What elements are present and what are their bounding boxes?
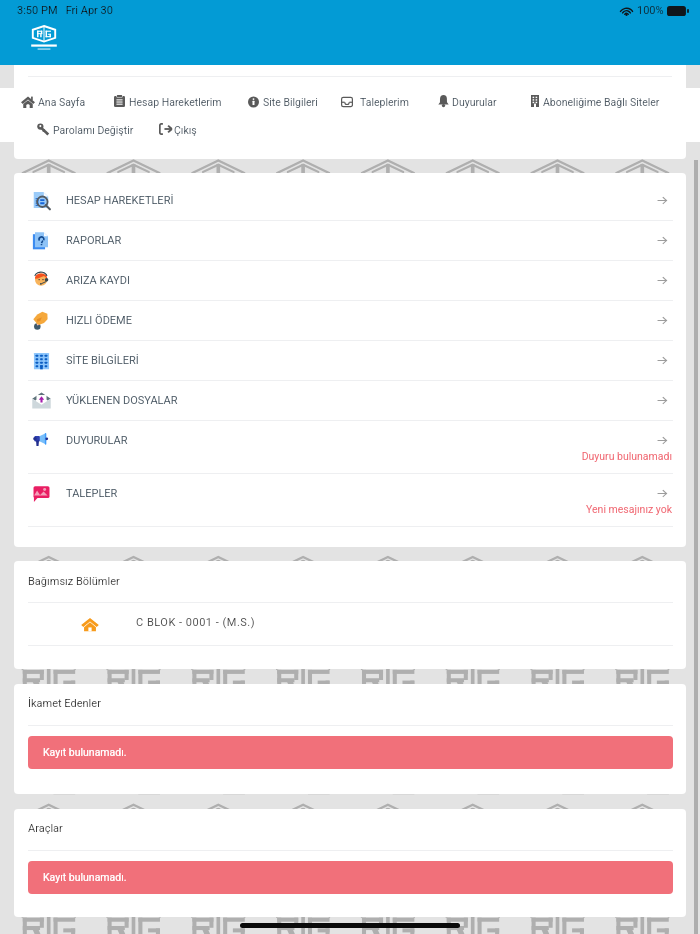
button[interactable]	[244, 92, 344, 112]
staticText: DUYURULAR	[66, 434, 128, 447]
staticText: Ana Sayfa	[38, 96, 86, 108]
button[interactable]	[110, 91, 231, 111]
button[interactable]	[155, 119, 206, 139]
staticText: 100%	[637, 4, 664, 17]
staticText: RAPORLAR	[66, 234, 122, 247]
button[interactable]: SİTE BİLGİLERİ	[14, 340, 686, 380]
button[interactable]: RAPORLAR	[14, 220, 686, 260]
button[interactable]	[434, 91, 505, 111]
staticText: Çıkış	[174, 124, 197, 136]
button[interactable]: Kayıt bulunamadı.	[28, 861, 673, 894]
staticText: Bağımsız Bölümler	[28, 575, 120, 588]
staticText: Kayıt bulunamadı.	[43, 746, 127, 758]
button[interactable]: C BLOK - 0001 - (M.S.)	[28, 603, 673, 645]
staticText: SİTE BİLGİLERİ	[66, 354, 139, 367]
staticText: C BLOK - 0001 - (M.S.)	[136, 616, 256, 629]
staticText: ARIZA KAYDI	[66, 274, 130, 287]
staticText: Taleplerim	[360, 96, 409, 108]
staticText: TALEPLER	[66, 487, 118, 500]
other: Gümüştekin logo	[28, 26, 60, 52]
staticText: İkamet Edenler	[28, 697, 101, 710]
button[interactable]: ARIZA KAYDI	[14, 260, 686, 300]
staticText: Aboneliğime Bağlı Siteler	[543, 96, 660, 108]
staticText: Araçlar	[28, 822, 63, 835]
staticText: 3:50 PM Fri Apr 30	[17, 4, 113, 17]
button[interactable]	[526, 91, 684, 111]
staticText: Kayıt bulunamadı.	[43, 871, 127, 883]
staticText: Yeni mesajınız yok	[414, 503, 672, 515]
button[interactable]	[17, 92, 92, 112]
button[interactable]: Kayıt bulunamadı.	[28, 736, 673, 769]
staticText: Duyuru bulunamadı	[414, 450, 672, 462]
button[interactable]: YÜKLENEN DOSYALAR	[14, 380, 686, 420]
staticText: HIZLI ÖDEME	[66, 314, 132, 327]
button[interactable]	[337, 92, 419, 112]
button[interactable]: DUYURULAR	[14, 420, 686, 473]
button[interactable]: HESAP HAREKETLERİ	[14, 180, 686, 220]
staticText: HESAP HAREKETLERİ	[66, 194, 174, 207]
staticText: Parolamı Değiştir	[53, 124, 134, 136]
button[interactable]	[33, 119, 151, 139]
staticText: Duyurular	[452, 96, 497, 108]
button[interactable]: HIZLI ÖDEME	[14, 300, 686, 340]
staticText: Site Bilgileri	[263, 96, 318, 108]
staticText: Hesap Hareketlerim	[129, 96, 222, 108]
staticText: YÜKLENEN DOSYALAR	[66, 394, 178, 407]
button[interactable]: TALEPLER	[14, 473, 686, 526]
